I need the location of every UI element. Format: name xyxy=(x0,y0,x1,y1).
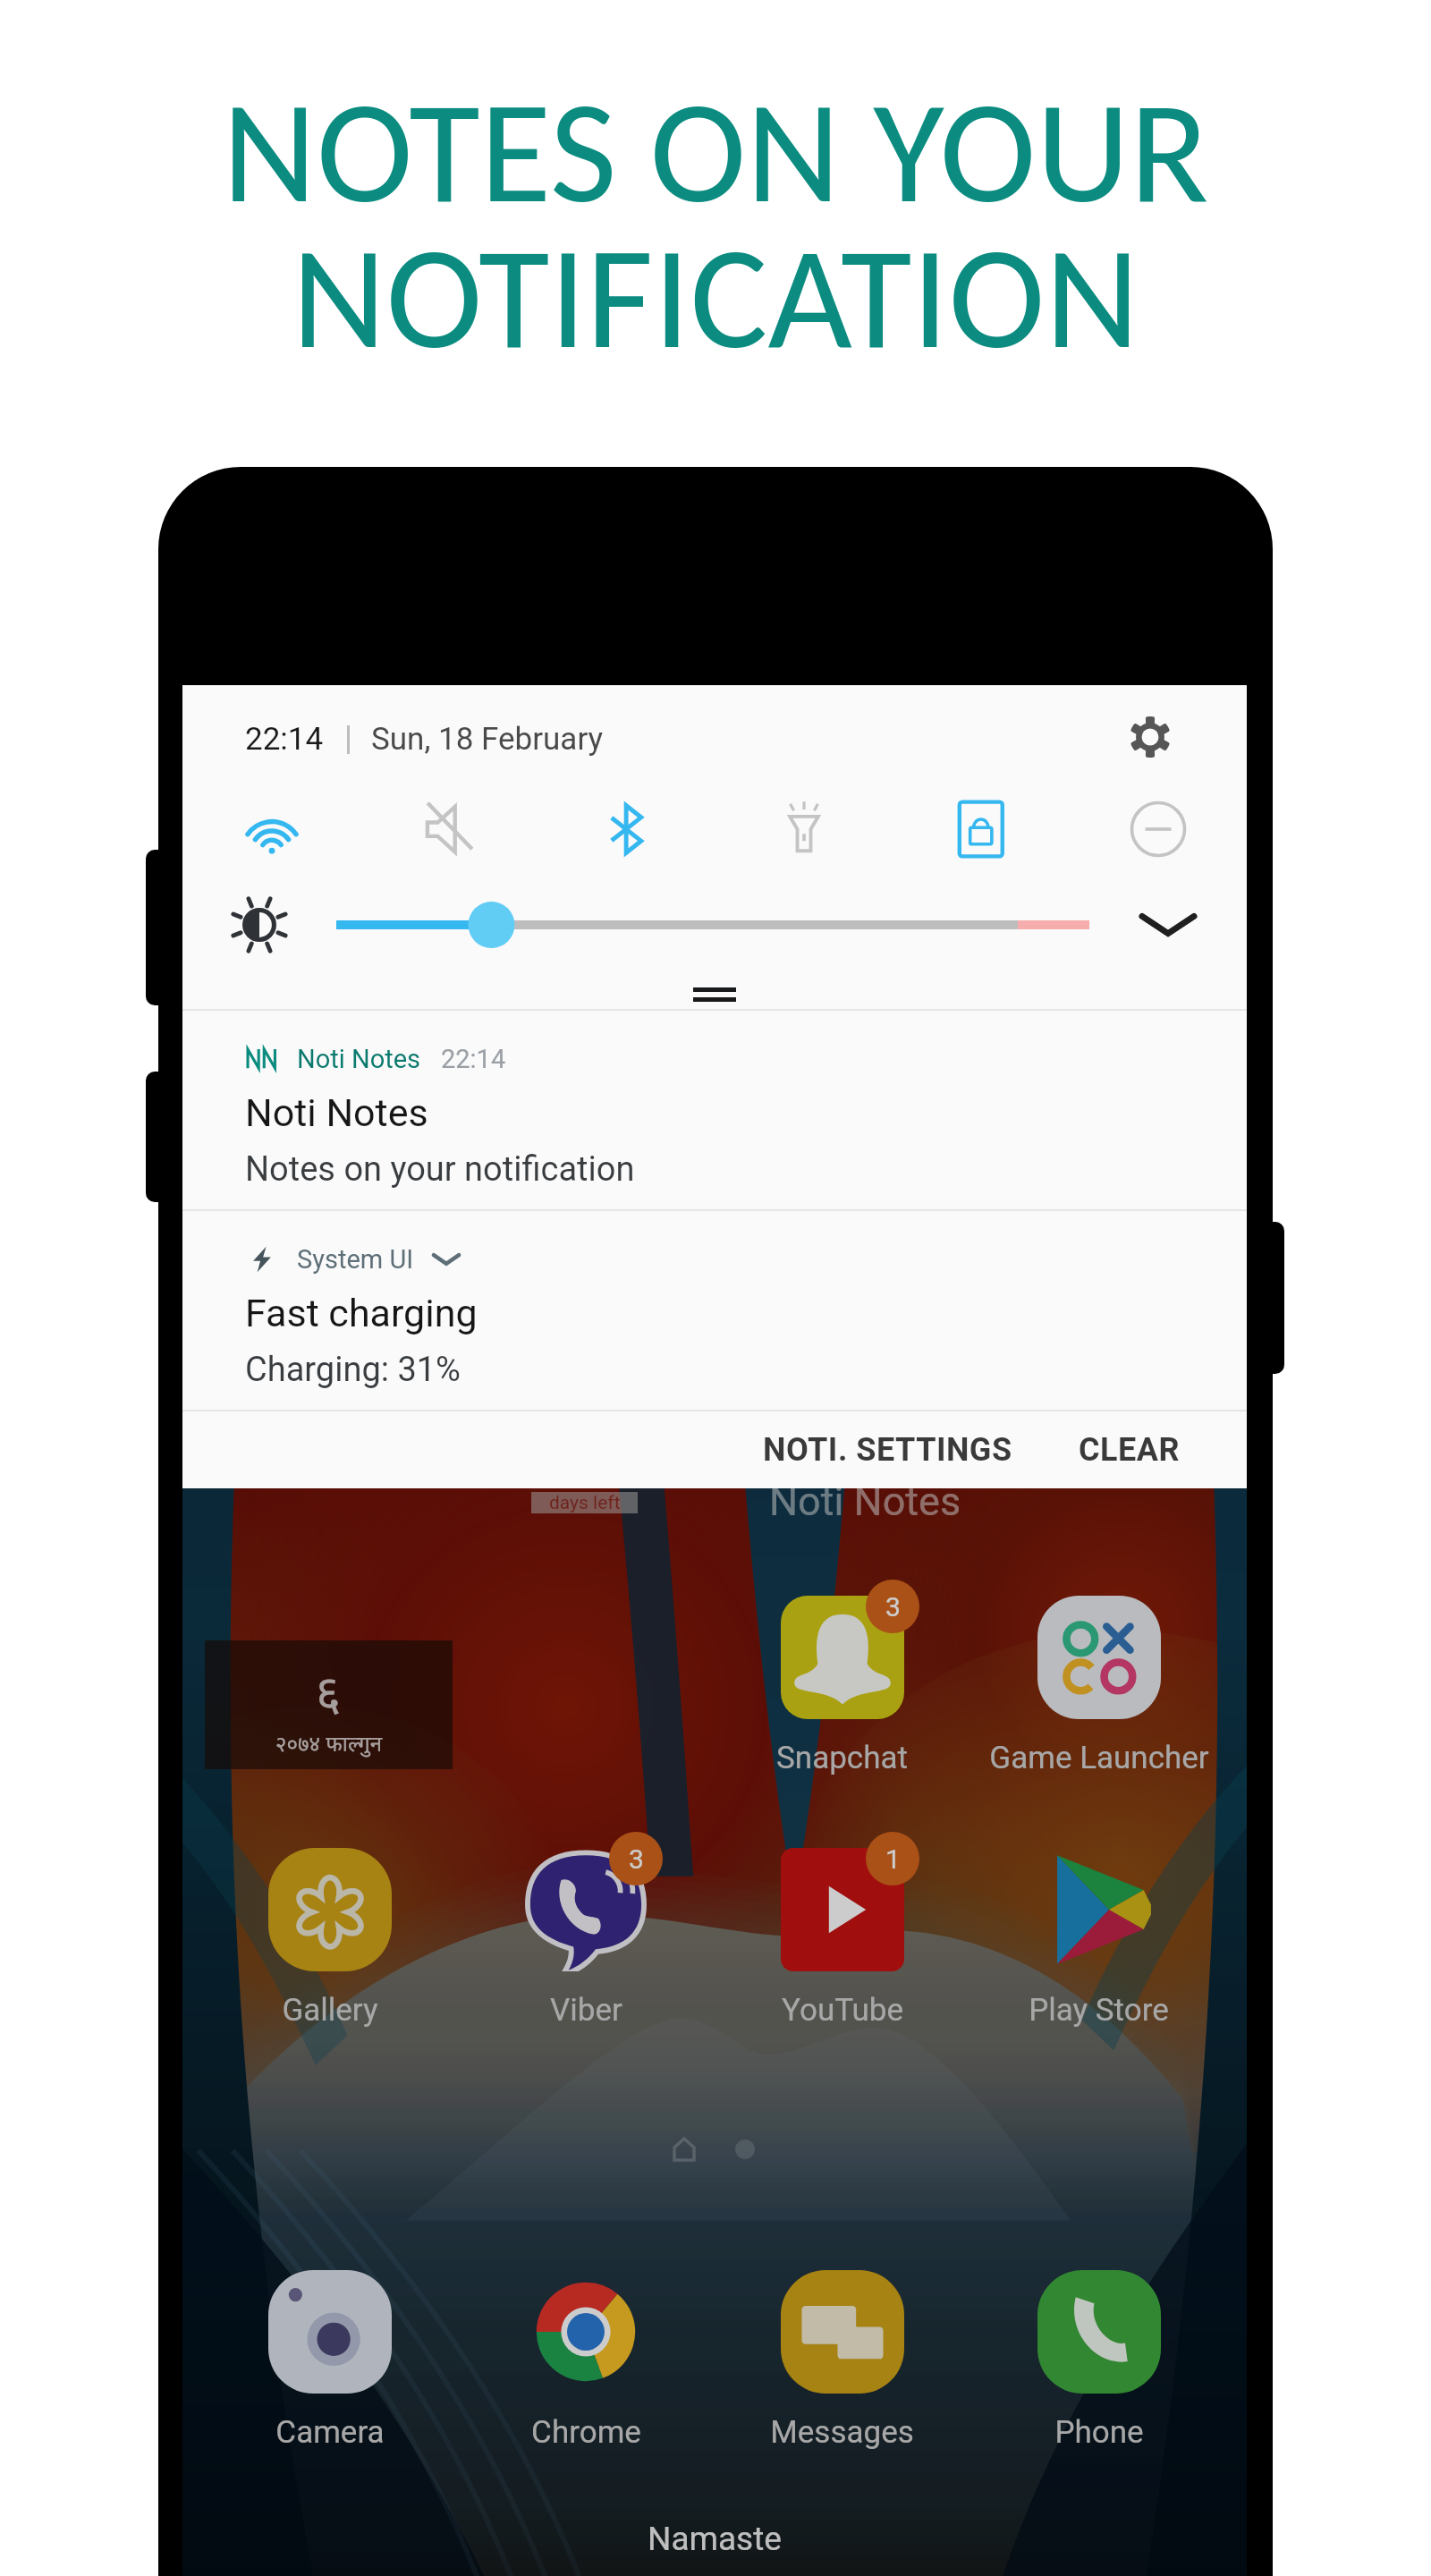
staticText: Charging: 31% xyxy=(245,1350,461,1390)
button[interactable]: Expand quick settings xyxy=(1089,877,1247,973)
button[interactable]: Gallery xyxy=(202,1848,458,2029)
button[interactable]: 3 xyxy=(458,1848,714,2029)
button[interactable]: Screen rotation lock xyxy=(893,782,1070,877)
staticText: Noti Notes xyxy=(245,1090,428,1135)
button[interactable]: System UI xyxy=(182,1211,1247,1410)
button[interactable]: Mute xyxy=(360,782,538,877)
button[interactable]: Settings xyxy=(1109,692,1191,775)
button[interactable]: Brightness xyxy=(336,898,1089,952)
staticText: Noti Notes xyxy=(297,1044,421,1074)
staticText: 1 xyxy=(885,1843,901,1875)
staticText: Phone xyxy=(1054,2414,1144,2451)
staticText: Gallery xyxy=(282,1992,378,2029)
button[interactable]: Noti Notes xyxy=(182,1011,1247,1209)
button[interactable]: Wi-Fi xyxy=(182,782,360,877)
staticText: 3 xyxy=(629,1843,644,1875)
staticText: Camera xyxy=(275,2414,385,2451)
button[interactable]: 3 xyxy=(714,1596,970,1776)
button[interactable]: Play Store xyxy=(970,1848,1227,2029)
staticText: NOTIFICATION xyxy=(292,208,1139,386)
button[interactable]: 1 xyxy=(714,1848,970,2029)
staticText: Chrome xyxy=(531,2414,641,2451)
staticText: Viber xyxy=(550,1992,622,2029)
button[interactable]: Phone xyxy=(970,2270,1227,2451)
button[interactable]: Flashlight xyxy=(715,782,893,877)
button[interactable]: Do not disturb xyxy=(1070,782,1247,877)
staticText: Snapchat xyxy=(776,1740,908,1776)
staticText: System UI xyxy=(297,1244,414,1275)
button[interactable]: Game Launcher xyxy=(970,1596,1227,1776)
button[interactable]: Bluetooth xyxy=(538,782,715,877)
staticText: Fast charging xyxy=(245,1291,478,1335)
staticText: Messages xyxy=(770,2414,914,2451)
staticText: Namaste xyxy=(648,2520,782,2558)
button[interactable]: CLEAR xyxy=(1064,1411,1195,1488)
staticText: NOTI. SETTINGS xyxy=(763,1431,1012,1469)
staticText: 3 xyxy=(885,1591,901,1623)
staticText: 22:14 xyxy=(441,1044,506,1074)
staticText: Game Launcher xyxy=(989,1740,1209,1776)
staticText: NOTES ON YOUR xyxy=(222,63,1209,241)
staticText: ६ xyxy=(316,1658,342,1724)
button[interactable]: NOTI. SETTINGS xyxy=(749,1411,1027,1488)
staticText: Play Store xyxy=(1029,1992,1169,2029)
staticText: YouTube xyxy=(782,1992,903,2029)
staticText: 22:14 xyxy=(245,721,324,758)
staticText: CLEAR xyxy=(1079,1431,1181,1469)
staticText: Notes on your notification xyxy=(245,1149,635,1190)
button[interactable]: Camera xyxy=(202,2270,458,2451)
button[interactable]: Chrome xyxy=(458,2270,714,2451)
staticText: २०७४ फाल्गुन xyxy=(275,1728,383,1758)
button[interactable]: Calendar widget xyxy=(205,1640,453,1769)
staticText: Sun, 18 February xyxy=(371,721,604,758)
button[interactable]: Messages xyxy=(714,2270,970,2451)
staticText: Noti Notes xyxy=(769,1478,961,1525)
staticText: days left xyxy=(549,1492,621,1513)
